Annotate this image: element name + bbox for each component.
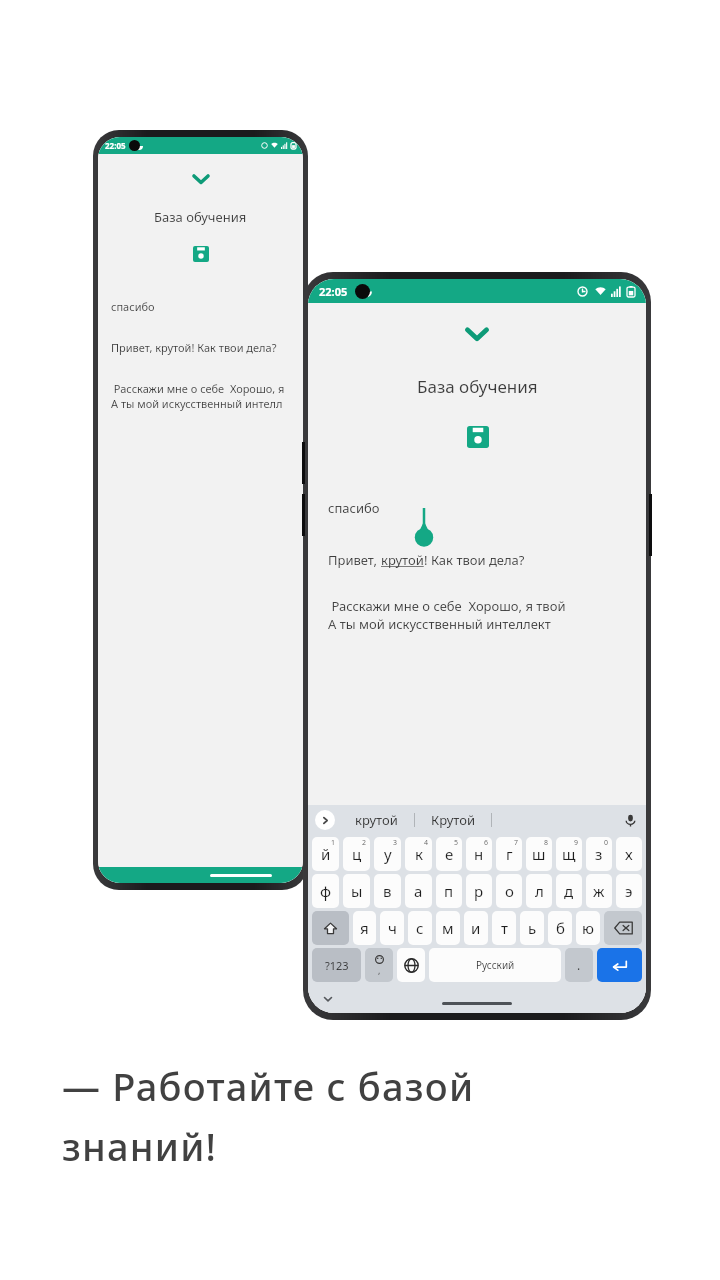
staticText: 22:05	[319, 284, 348, 299]
staticText: ж	[593, 881, 605, 901]
button[interactable]: а	[405, 874, 432, 908]
staticText: Расскажи мне о себе Хорошо, я твой созда…	[328, 597, 626, 615]
button[interactable]: э	[616, 874, 642, 908]
staticText: 22:05	[105, 140, 126, 151]
button[interactable]: .	[565, 948, 593, 982]
button[interactable]: м	[436, 911, 460, 945]
staticText: База обучения	[417, 375, 538, 398]
button[interactable]: ?123	[312, 948, 361, 982]
button[interactable]: ш	[526, 837, 552, 871]
button[interactable]: ц	[343, 837, 370, 871]
button[interactable]: х	[616, 837, 642, 871]
staticText: ь	[528, 918, 537, 938]
staticText: о	[505, 881, 514, 901]
button[interactable]: Save	[459, 418, 496, 455]
staticText: Русский	[476, 958, 515, 972]
staticText: т	[501, 918, 508, 938]
button[interactable]: Русский	[429, 948, 561, 982]
button[interactable]: Collapse	[183, 168, 218, 190]
button[interactable]: в	[374, 874, 401, 908]
button[interactable]: е	[436, 837, 462, 871]
other: Change language	[404, 958, 419, 973]
button[interactable]: ы	[343, 874, 370, 908]
staticText: ш	[532, 844, 546, 864]
staticText: ф	[320, 881, 332, 901]
staticText: крутой	[355, 811, 398, 829]
staticText: я	[360, 918, 369, 938]
staticText: База обучения	[154, 208, 247, 226]
staticText: и	[471, 918, 481, 938]
button[interactable]: й	[312, 837, 339, 871]
staticText: 9	[574, 838, 579, 848]
button[interactable]: ь	[520, 911, 544, 945]
button[interactable]: п	[436, 874, 462, 908]
staticText: ы	[351, 881, 363, 901]
button[interactable]: ю	[576, 911, 600, 945]
button[interactable]: ж	[586, 874, 612, 908]
button[interactable]: More	[315, 810, 335, 830]
staticText: Привет,	[328, 551, 381, 569]
staticText: р	[474, 881, 484, 901]
staticText: Крутой	[431, 811, 475, 829]
staticText: Расскажи мне о себе Хорошо, я	[111, 381, 285, 396]
staticText: е	[445, 844, 454, 864]
staticText: д	[564, 881, 574, 901]
staticText: 3	[393, 838, 398, 848]
button[interactable]: Collapse	[453, 319, 501, 349]
staticText: 6	[484, 838, 489, 848]
other: Emoji	[375, 955, 384, 976]
button[interactable]: о	[496, 874, 522, 908]
staticText: щ	[562, 844, 576, 864]
staticText: ,	[378, 964, 381, 976]
button[interactable]: ч	[380, 911, 404, 945]
staticText: крутой	[381, 551, 424, 569]
button[interactable]: Change language	[397, 948, 425, 982]
button[interactable]: крутой	[355, 811, 398, 829]
other: Enter	[611, 959, 628, 972]
button[interactable]: Shift	[312, 911, 349, 945]
staticText: .	[577, 957, 581, 973]
staticText: 2	[362, 838, 367, 848]
button[interactable]: л	[526, 874, 552, 908]
staticText: л	[535, 881, 544, 901]
button[interactable]: р	[466, 874, 492, 908]
staticText: 5	[454, 838, 459, 848]
button[interactable]: з	[586, 837, 612, 871]
staticText: у	[384, 844, 392, 864]
staticText: х	[625, 844, 633, 864]
button[interactable]: с	[408, 911, 432, 945]
button[interactable]: у	[374, 837, 401, 871]
button[interactable]: г	[496, 837, 522, 871]
staticText: ?123	[325, 958, 349, 973]
staticText: А ты мой искусственный интелл	[111, 396, 283, 411]
staticText: 7	[514, 838, 519, 848]
staticText: с	[416, 918, 424, 938]
staticText: спасибо	[111, 299, 155, 314]
button[interactable]: Hide keyboard	[322, 993, 334, 1005]
button[interactable]: щ	[556, 837, 582, 871]
button[interactable]: н	[466, 837, 492, 871]
button[interactable]: т	[492, 911, 516, 945]
button[interactable]: Voice input	[621, 811, 639, 829]
button[interactable]: Enter	[597, 948, 642, 982]
button[interactable]: Backspace	[604, 911, 642, 945]
staticText: э	[625, 881, 633, 901]
staticText: А ты мой искусственный интеллект	[328, 615, 551, 633]
button[interactable]: я	[353, 911, 376, 945]
staticText: 0	[604, 838, 609, 848]
button[interactable]: к	[405, 837, 432, 871]
other: Shift	[323, 921, 338, 936]
staticText: ц	[352, 844, 362, 864]
staticText: м	[442, 918, 454, 938]
button[interactable]: Крутой	[431, 811, 475, 829]
staticText: з	[595, 844, 603, 864]
button[interactable]: и	[464, 911, 488, 945]
staticText: 8	[544, 838, 549, 848]
button[interactable]: ф	[312, 874, 339, 908]
button[interactable]: Save	[187, 240, 214, 267]
staticText: п	[444, 881, 454, 901]
button[interactable]: д	[556, 874, 582, 908]
button[interactable]: Emoji	[365, 948, 393, 982]
button[interactable]: б	[548, 911, 572, 945]
staticText: 4	[424, 838, 429, 848]
